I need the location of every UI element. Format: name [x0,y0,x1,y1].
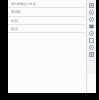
button[interactable]: Adjust [86,44,96,51]
button[interactable]: 渋谷 [8,17,86,24]
button[interactable]: Zoom [86,30,96,37]
button[interactable]: Crop [86,37,96,44]
staticText: 渋谷 [11,19,18,23]
staticText: 新宿区 [11,10,22,14]
button[interactable]: Circle tool [86,16,96,23]
staticText: 東京都港区六本木 [11,2,36,6]
button[interactable]: 新宿区 [8,8,86,16]
staticText: 品川 [11,27,18,31]
button[interactable]: Frame [86,51,96,58]
button[interactable]: Select [86,2,96,9]
button[interactable]: 東京都港区六本木 [8,0,86,7]
button[interactable]: 品川 [8,25,86,32]
button[interactable]: Fill [86,23,96,30]
button[interactable]: Shape [86,9,96,16]
